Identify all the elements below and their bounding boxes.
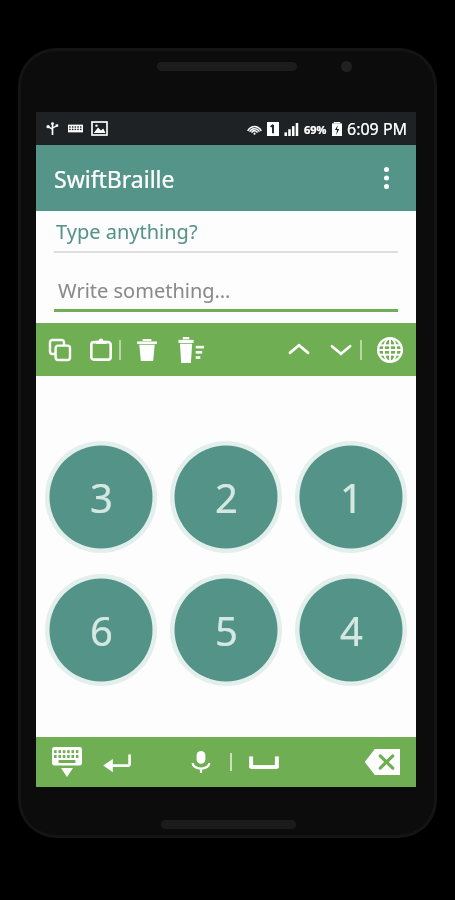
- button[interactable]: Paste: [83, 327, 119, 373]
- button[interactable]: 4: [295, 574, 407, 686]
- staticText: Type anything?: [56, 218, 198, 245]
- button[interactable]: 5: [170, 574, 282, 686]
- staticText: 3: [90, 470, 113, 524]
- staticText: 4: [340, 603, 363, 657]
- button[interactable]: Voice input: [184, 739, 218, 785]
- button[interactable]: Language: [370, 327, 410, 373]
- button[interactable]: Backspace: [358, 739, 406, 785]
- staticText: 2: [215, 470, 238, 524]
- button[interactable]: Space: [244, 739, 284, 785]
- staticText: 69%: [304, 122, 327, 137]
- button[interactable]: Hide keyboard: [46, 739, 88, 785]
- button[interactable]: Delete: [129, 327, 165, 373]
- staticText: 1: [340, 470, 363, 524]
- button[interactable]: Copy: [43, 327, 77, 373]
- button[interactable]: Down: [322, 327, 360, 373]
- button[interactable]: 3: [45, 441, 157, 553]
- staticText: Write something…: [58, 277, 231, 304]
- staticText: SwiftBraille: [54, 163, 175, 194]
- button[interactable]: 6: [45, 574, 157, 686]
- staticText: 5: [215, 603, 238, 657]
- button[interactable]: Delete all: [171, 327, 211, 373]
- button[interactable]: 1: [295, 441, 407, 553]
- staticText: 6:09 PM: [347, 118, 408, 140]
- staticText: 6: [90, 603, 113, 657]
- button[interactable]: 2: [170, 441, 282, 553]
- button[interactable]: Write something…: [36, 273, 416, 307]
- button[interactable]: Up: [280, 327, 318, 373]
- button[interactable]: Enter: [96, 739, 138, 785]
- button[interactable]: More options: [364, 156, 408, 200]
